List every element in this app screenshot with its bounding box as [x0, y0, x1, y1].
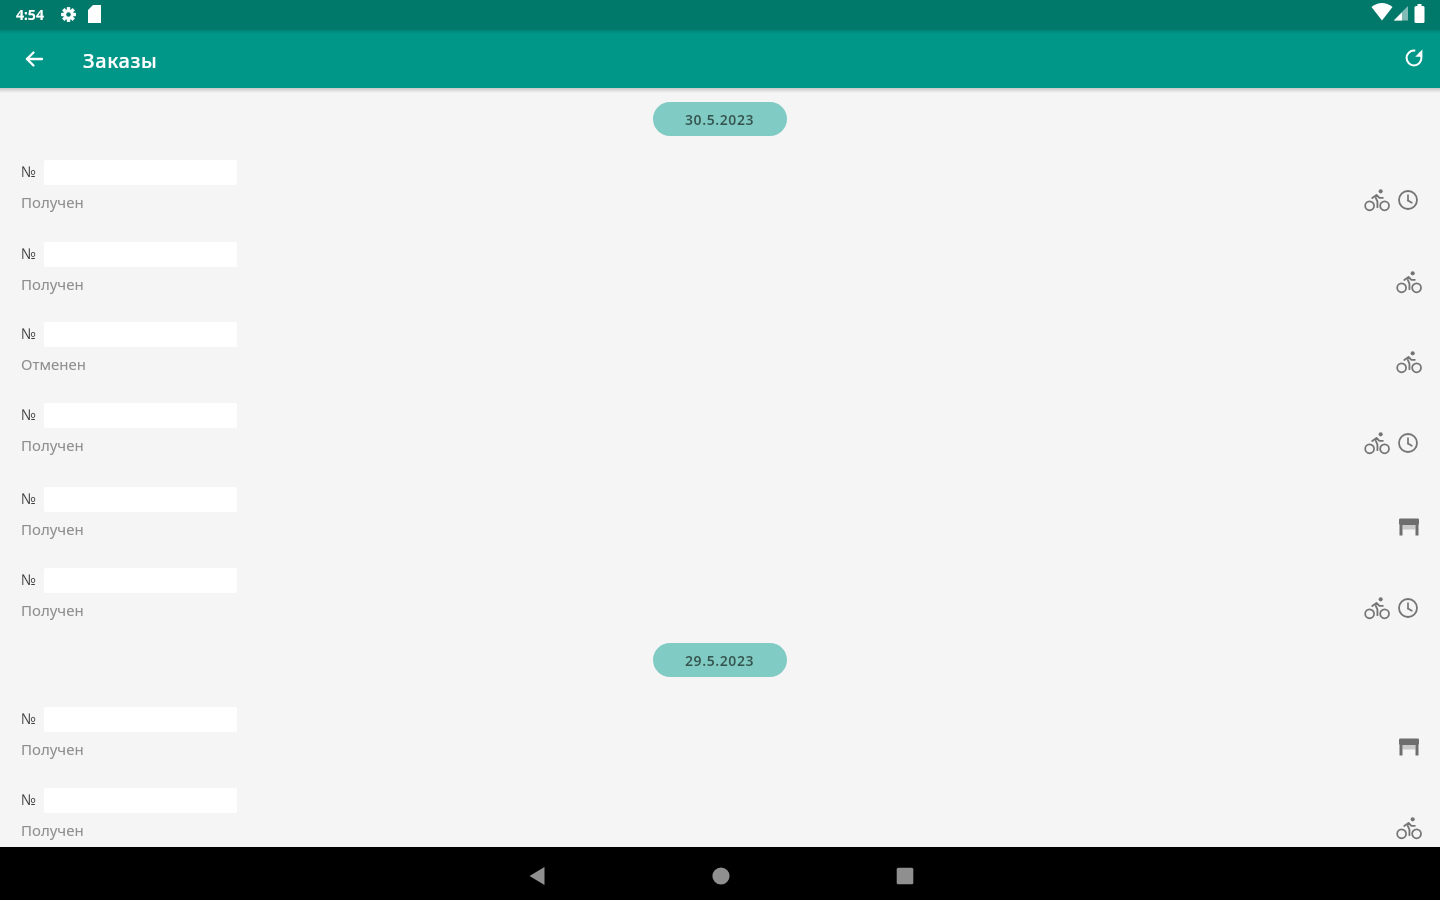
- staticText: №: [21, 708, 37, 728]
- button[interactable]: №: [0, 389, 1440, 470]
- button[interactable]: №: [0, 308, 1440, 389]
- staticText: №: [21, 488, 37, 508]
- button[interactable]: №: [0, 693, 1440, 774]
- button[interactable]: [521, 858, 553, 890]
- staticText: Получен: [21, 739, 84, 759]
- staticText: №: [21, 323, 37, 343]
- button[interactable]: №: [0, 146, 1440, 227]
- staticText: 30.5.2023: [685, 110, 755, 129]
- staticText: Отменен: [21, 354, 86, 374]
- staticText: Получен: [21, 519, 84, 539]
- staticText: Заказы: [83, 47, 158, 74]
- staticText: 29.5.2023: [685, 651, 755, 670]
- staticText: №: [21, 569, 37, 589]
- button[interactable]: [705, 858, 737, 890]
- button[interactable]: [22, 47, 46, 71]
- button[interactable]: №: [0, 774, 1440, 855]
- staticText: Получен: [21, 435, 84, 455]
- staticText: Получен: [21, 274, 84, 294]
- staticText: №: [21, 404, 37, 424]
- button[interactable]: №: [0, 228, 1440, 309]
- staticText: №: [21, 161, 37, 181]
- staticText: №: [21, 789, 37, 809]
- staticText: Получен: [21, 820, 84, 840]
- button[interactable]: [889, 858, 921, 890]
- button[interactable]: [1402, 46, 1426, 70]
- button[interactable]: №: [0, 473, 1440, 554]
- button[interactable]: №: [0, 554, 1440, 635]
- staticText: 4:54: [16, 5, 44, 24]
- staticText: №: [21, 243, 37, 263]
- staticText: Получен: [21, 192, 84, 212]
- staticText: Получен: [21, 600, 84, 620]
